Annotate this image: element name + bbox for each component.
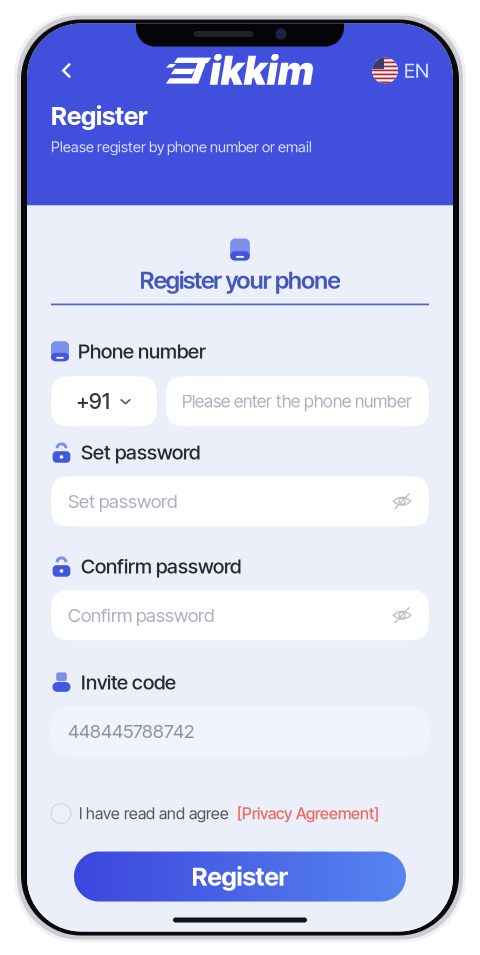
staticText: +91	[76, 388, 110, 414]
staticText: Set password	[68, 490, 177, 512]
button[interactable]: EN	[372, 54, 429, 86]
button[interactable]: Back	[51, 54, 83, 86]
button[interactable]: I have read and agree	[51, 799, 429, 827]
staticText: [Privacy Agreement]	[237, 804, 379, 823]
staticText: I have read and agree	[79, 804, 229, 823]
button[interactable]: Register	[74, 851, 406, 901]
staticText: 448445788742	[68, 720, 194, 742]
staticText: EN	[404, 58, 429, 83]
staticText: Invite code	[81, 670, 176, 694]
staticText: Register your phone	[140, 265, 340, 294]
staticText: Confirm password	[68, 604, 214, 626]
staticText: Phone number	[78, 339, 206, 363]
staticText: ikkim	[210, 47, 314, 94]
staticText: Confirm password	[81, 554, 241, 578]
staticText: Register	[191, 861, 288, 892]
staticText: Please enter the phone number	[182, 391, 412, 412]
staticText: Please register by phone number or email	[51, 138, 312, 156]
button[interactable]: +91	[51, 376, 157, 426]
staticText: Register	[51, 100, 148, 131]
staticText: Set password	[81, 440, 200, 464]
